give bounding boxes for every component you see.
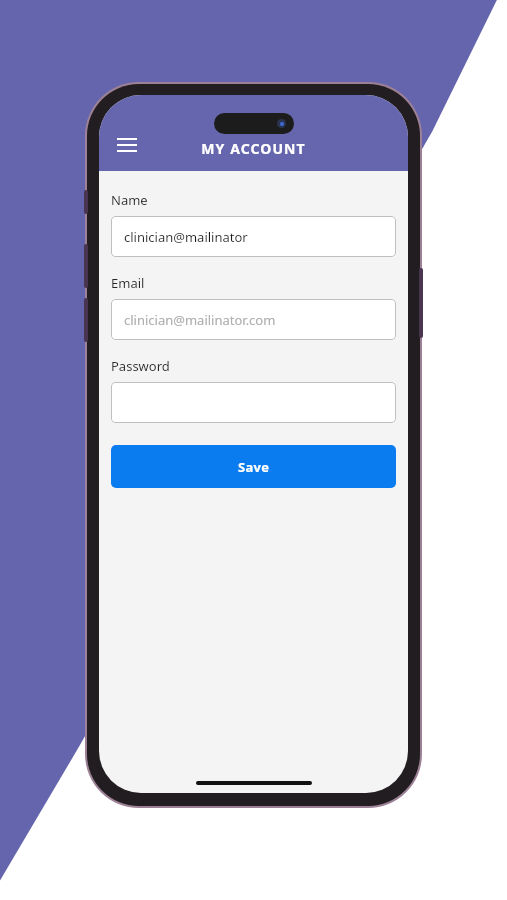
staticText: MY ACCOUNT <box>201 139 306 158</box>
button[interactable]: clinician@mailinator.com <box>111 299 396 340</box>
button[interactable]: Save <box>111 445 396 488</box>
button[interactable]: clinician@mailinator <box>111 216 396 257</box>
staticText: Password <box>111 357 170 375</box>
staticText: Name <box>111 191 148 209</box>
staticText: Email <box>111 274 145 292</box>
button[interactable] <box>111 382 396 423</box>
staticText: clinician@mailinator.com <box>124 311 276 329</box>
staticText: clinician@mailinator <box>124 228 248 246</box>
button[interactable]: Open navigation menu <box>107 125 147 165</box>
staticText: Save <box>238 458 270 476</box>
